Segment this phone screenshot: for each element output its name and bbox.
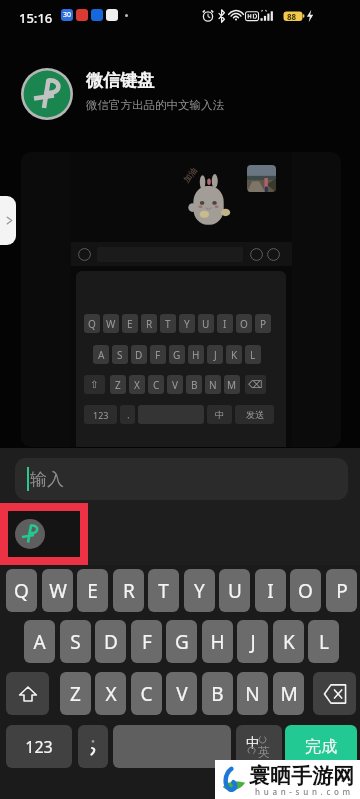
button[interactable]: S [60,620,91,663]
button[interactable]: C [131,672,162,715]
staticText: 中 [246,734,259,750]
button[interactable]: 123 [6,725,72,768]
button[interactable]: R [113,569,144,612]
staticText: N [245,681,260,707]
staticText: U [228,578,242,604]
staticText: ， [124,410,132,420]
staticText: B [211,681,224,707]
staticText: C [153,378,160,392]
staticText: Y [194,578,205,604]
button[interactable]: M [273,672,304,715]
button[interactable]: T [148,569,179,612]
button[interactable]: P [326,569,357,612]
staticText: I [223,317,227,331]
staticText: G [175,629,189,655]
staticText: Y [184,317,190,331]
staticText: W [49,578,67,604]
staticText: 微信官方出品的中文输入法 [86,98,224,112]
staticText: V [176,681,188,707]
staticText: ⌫ [248,379,263,391]
staticText: M [280,681,298,707]
button[interactable]: Z [60,672,91,715]
button[interactable]: U [219,569,250,612]
staticText: Q [88,317,96,331]
staticText: F [142,629,152,655]
button[interactable]: B [202,672,233,715]
staticText: 加油 [181,166,199,184]
button[interactable]: J [237,620,268,663]
button[interactable]: A [24,620,55,663]
staticText: 30 [63,10,72,20]
staticText: D [135,348,143,362]
staticText: S [70,629,81,655]
staticText: O [298,578,313,604]
staticText: I [267,578,274,604]
staticText: h u a n - s u n . c o m [249,786,357,797]
staticText: A [33,629,46,655]
staticText: 输入 [30,469,64,490]
staticText: 中 [215,409,224,420]
button[interactable]: V [166,672,197,715]
button[interactable]: K [273,620,304,663]
staticText: K [231,348,238,362]
button[interactable]: X [95,672,126,715]
button[interactable]: Comma [78,725,108,768]
staticText: Q [14,578,29,604]
staticText: A [98,348,105,362]
button[interactable]: H [202,620,233,663]
staticText: H [192,348,200,362]
button[interactable]: Expand panel [0,196,16,245]
button[interactable]: N [237,672,268,715]
staticText: J [214,348,217,362]
staticText: Z [115,378,121,392]
staticText: E [87,578,98,604]
button[interactable] [113,725,231,768]
staticText: 88 [287,11,297,22]
staticText: O [240,317,248,331]
button[interactable]: 输入 [15,458,348,500]
staticText: N [209,378,217,392]
staticText: 完成 [305,737,337,757]
staticText: D [104,629,118,655]
staticText: 123 [25,736,53,758]
staticText: 微信键盘 [86,70,154,91]
staticText: X [134,378,140,392]
button[interactable]: I [255,569,286,612]
button[interactable]: D [95,620,126,663]
button[interactable]: Backspace [313,672,356,715]
staticText: X [105,681,117,707]
staticText: R [123,578,135,604]
button[interactable]: Switch language [236,725,282,768]
staticText: J [250,629,256,655]
staticText: M [227,378,237,392]
staticText: S [117,348,123,362]
staticText: P [260,317,267,331]
staticText: V [172,378,178,392]
staticText: W [106,317,116,331]
staticText: 15:16 [19,9,53,27]
staticText: 123 [93,409,109,421]
staticText: L [319,629,329,655]
staticText: U [202,317,210,331]
button[interactable]: E [77,569,108,612]
staticText: G [173,348,181,362]
staticText: E [127,317,133,331]
staticText: H [210,629,225,655]
button[interactable]: 完成 [285,725,357,768]
staticText: C [140,681,153,707]
button[interactable]: Shift [6,672,49,715]
button[interactable]: W [42,569,73,612]
button[interactable]: L [308,620,339,663]
staticText: R [146,317,153,331]
staticText: P [336,578,348,604]
staticText: K [283,629,295,655]
staticText: B [191,378,198,392]
button[interactable]: Q [6,569,37,612]
button[interactable]: O [290,569,321,612]
button[interactable]: G [166,620,197,663]
staticText: T [165,317,171,331]
button[interactable]: WeChat keyboard [8,511,80,557]
button[interactable]: Y [184,569,215,612]
button[interactable]: F [131,620,162,663]
staticText: F [155,348,161,362]
